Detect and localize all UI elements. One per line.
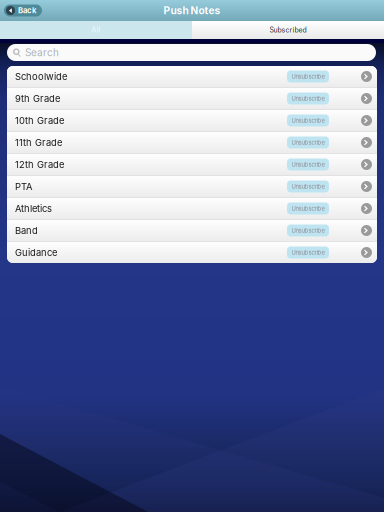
button[interactable]: 9th Grade [7,88,377,109]
staticText: PTA [15,181,32,192]
staticText: Athletics [15,203,52,214]
button[interactable]: 12th Grade [7,154,377,175]
staticText: Unsubscribe [291,183,324,190]
staticText: Unsubscribe [291,249,324,256]
button[interactable]: Guidance [7,242,377,263]
staticText: Back [18,6,36,15]
staticText: Schoolwide [15,71,67,82]
button[interactable]: Unsubscribe [287,202,329,214]
button[interactable]: Athletics [7,198,377,219]
button[interactable]: Unsubscribe [287,92,329,104]
button[interactable]: Unsubscribe [287,136,329,148]
staticText: Unsubscribe [291,139,324,146]
staticText: 12th Grade [15,159,64,170]
button[interactable]: 11th Grade [7,132,377,153]
staticText: Push Notes [163,4,220,17]
button[interactable]: Unsubscribe [287,246,329,258]
button[interactable]: Back [4,4,42,16]
staticText: Search [25,46,59,59]
staticText: Guidance [15,247,57,258]
staticText: 10th Grade [15,115,64,126]
button[interactable]: Unsubscribe [287,70,329,82]
button[interactable]: Unsubscribe [287,158,329,170]
button[interactable]: Subscribed [192,21,384,39]
button[interactable]: Schoolwide [7,66,377,87]
staticText: All [91,26,100,34]
staticText: Unsubscribe [291,117,324,124]
staticText: Unsubscribe [291,95,324,102]
staticText: Unsubscribe [291,73,324,80]
button[interactable]: Unsubscribe [287,180,329,192]
staticText: Unsubscribe [291,227,324,234]
staticText: Unsubscribe [291,205,324,212]
staticText: 11th Grade [15,137,62,148]
staticText: 9th Grade [15,93,60,104]
button[interactable]: Band [7,220,377,241]
button[interactable]: PTA [7,176,377,197]
staticText: Band [15,225,38,236]
button[interactable]: Unsubscribe [287,224,329,236]
button[interactable]: 10th Grade [7,110,377,131]
staticText: Subscribed [269,26,306,34]
staticText: Unsubscribe [291,161,324,168]
button[interactable]: Unsubscribe [287,114,329,126]
